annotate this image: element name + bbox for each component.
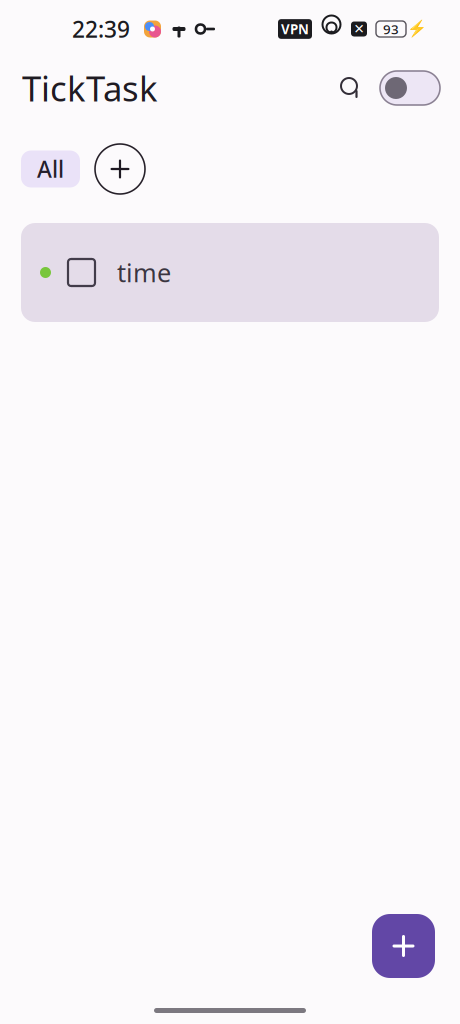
staticText: TickTask bbox=[22, 65, 158, 111]
staticText: 22:39 bbox=[72, 14, 130, 44]
staticText: ⚡ bbox=[407, 20, 427, 38]
button[interactable]: Add task bbox=[372, 914, 435, 978]
staticText: VPN bbox=[281, 20, 309, 38]
button[interactable]: Toggle dark mode bbox=[380, 71, 440, 105]
staticText: All bbox=[37, 154, 64, 184]
staticText: 93 bbox=[383, 20, 399, 38]
staticText: time bbox=[117, 256, 171, 289]
button[interactable]: Add list bbox=[95, 144, 145, 194]
button[interactable]: All bbox=[21, 150, 80, 187]
staticText: ✕ bbox=[353, 21, 364, 36]
button[interactable]: time bbox=[21, 223, 439, 322]
button[interactable]: Search bbox=[331, 68, 371, 108]
